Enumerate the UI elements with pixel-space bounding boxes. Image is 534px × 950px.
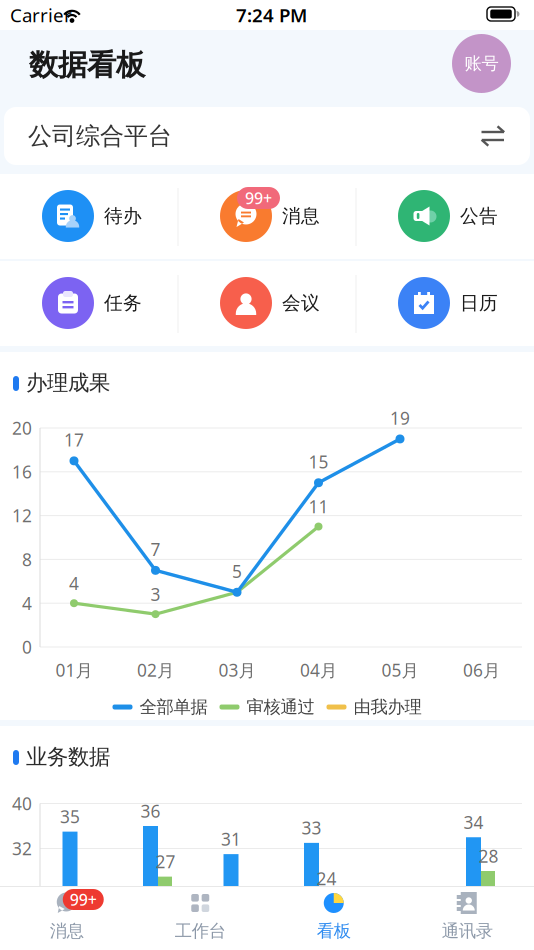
- staticText: 全部单据: [139, 696, 207, 718]
- button[interactable]: 通讯录: [407, 890, 527, 942]
- staticText: 15: [308, 450, 328, 473]
- staticText: 日历: [460, 291, 498, 314]
- button[interactable]: 公司综合平台: [4, 107, 530, 165]
- staticText: 99+: [245, 187, 272, 209]
- staticText: 99+: [70, 889, 97, 910]
- button[interactable]: [398, 190, 450, 242]
- staticText: 业务数据: [26, 744, 110, 770]
- staticText: 3: [150, 583, 160, 606]
- staticText: 12: [12, 504, 32, 527]
- button[interactable]: 消息: [7, 890, 127, 942]
- staticText: 32: [12, 837, 32, 860]
- button[interactable]: 消息: [282, 202, 320, 230]
- staticText: 任务: [104, 291, 142, 314]
- button[interactable]: 日历: [460, 289, 498, 317]
- staticText: 会议: [282, 291, 320, 314]
- staticText: 34: [463, 811, 483, 834]
- staticText: 办理成果: [26, 370, 110, 396]
- staticText: 28: [478, 844, 498, 867]
- staticText: 19: [390, 406, 410, 429]
- button[interactable]: 待办: [104, 202, 142, 230]
- staticText: 02月: [137, 658, 174, 681]
- staticText: 16: [12, 460, 32, 483]
- staticText: 5: [232, 560, 242, 583]
- staticText: 33: [301, 816, 321, 839]
- staticText: Carrier: [10, 3, 72, 27]
- staticText: 40: [12, 792, 32, 815]
- staticText: 4: [22, 592, 32, 615]
- staticText: 8: [22, 548, 32, 571]
- staticText: 消息: [50, 920, 84, 942]
- button[interactable]: [42, 277, 94, 329]
- button[interactable]: [398, 277, 450, 329]
- button[interactable]: [220, 190, 272, 242]
- staticText: 27: [155, 850, 175, 873]
- staticText: 工作台: [175, 920, 226, 942]
- staticText: 4: [69, 572, 79, 595]
- button[interactable]: 任务: [104, 289, 142, 317]
- staticText: 消息: [282, 204, 320, 227]
- staticText: 04月: [300, 658, 337, 681]
- staticText: 20: [12, 416, 32, 439]
- staticText: 审核通过: [246, 696, 314, 718]
- staticText: 公司综合平台: [28, 121, 172, 151]
- staticText: 账号: [464, 53, 498, 74]
- staticText: 待办: [104, 204, 142, 227]
- button[interactable]: [220, 277, 272, 329]
- staticText: 通讯录: [442, 920, 493, 942]
- button[interactable]: 工作台: [140, 890, 260, 942]
- staticText: 公告: [460, 204, 498, 227]
- staticText: 7:24 PM: [236, 3, 307, 27]
- staticText: 06月: [463, 658, 500, 681]
- button[interactable]: 账号: [452, 34, 511, 93]
- button[interactable]: [42, 190, 94, 242]
- staticText: 看板: [317, 920, 351, 942]
- staticText: 7: [150, 538, 160, 561]
- staticText: 0: [22, 635, 32, 658]
- staticText: 24: [316, 867, 336, 890]
- staticText: 11: [308, 495, 328, 518]
- button[interactable]: 公告: [460, 202, 498, 230]
- staticText: 17: [64, 428, 84, 451]
- staticText: 03月: [218, 658, 255, 681]
- staticText: 36: [140, 799, 160, 822]
- staticText: 35: [60, 805, 80, 828]
- staticText: 05月: [381, 658, 418, 681]
- button[interactable]: 会议: [282, 289, 320, 317]
- button[interactable]: 看板: [274, 890, 394, 942]
- staticText: 31: [221, 828, 241, 851]
- staticText: 数据看板: [29, 47, 145, 83]
- staticText: 01月: [55, 658, 92, 681]
- staticText: 由我办理: [353, 696, 421, 718]
